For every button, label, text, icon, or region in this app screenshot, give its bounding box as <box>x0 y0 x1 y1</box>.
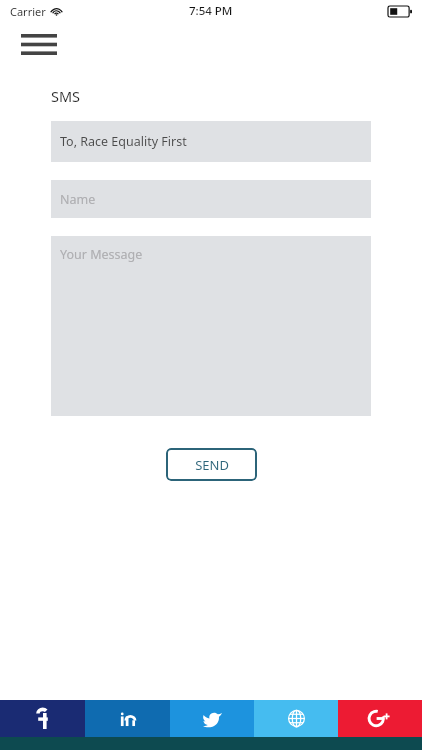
button[interactable]: Name <box>51 180 371 218</box>
staticText: To, Race Equality First <box>60 133 187 150</box>
button[interactable]: To, Race Equality First <box>51 121 371 162</box>
staticText: Name <box>60 191 96 208</box>
button[interactable]: LinkedIn <box>85 700 170 737</box>
button[interactable]: Facebook <box>0 700 85 737</box>
staticText: SMS <box>51 86 81 106</box>
button[interactable]: Twitter <box>170 700 254 737</box>
staticText: 7:54 PM <box>189 3 233 19</box>
staticText: SEND <box>195 456 229 474</box>
button[interactable]: Website <box>254 700 338 737</box>
button[interactable]: Google Plus <box>338 700 422 737</box>
button[interactable]: SEND <box>166 448 257 481</box>
staticText: Your Message <box>60 246 143 263</box>
staticText: Carrier <box>10 4 46 19</box>
button[interactable]: Menu <box>18 30 60 58</box>
